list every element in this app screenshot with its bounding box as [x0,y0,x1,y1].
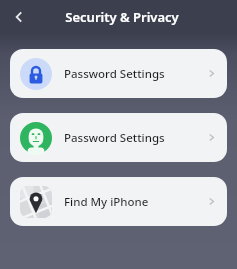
staticText: Security & Privacy [65,8,179,26]
button[interactable]: Find My iPhone [10,177,227,226]
staticText: Find My iPhone [64,194,149,210]
button[interactable]: Back [6,4,32,30]
button[interactable]: Password Settings [10,113,227,162]
button[interactable]: Password Settings [10,49,227,98]
staticText: Password Settings [64,130,165,146]
staticText: Password Settings [64,66,165,82]
